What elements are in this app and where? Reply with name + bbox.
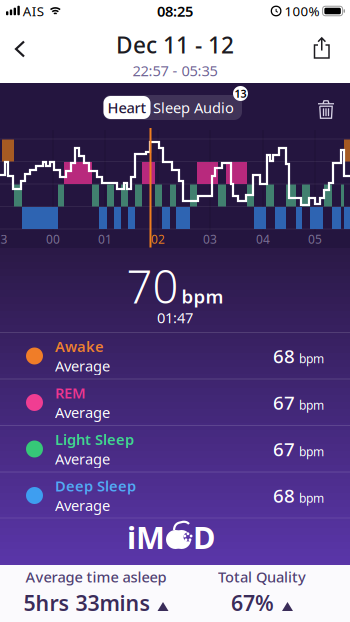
staticText: Average [55,356,110,375]
staticText: Awake [55,336,104,356]
staticText: 67 [273,390,295,415]
staticText: Average [55,495,110,515]
staticText: 03 [203,231,217,247]
staticText: 05 [308,231,322,247]
staticText: 02 [151,231,165,247]
staticText: 22:57 - 05:35 [132,61,217,80]
staticText: Heart [107,98,146,117]
button[interactable]: Heart [103,95,151,120]
staticText: bpm [299,444,324,459]
staticText: 70 [126,256,178,316]
staticText: 08:25 [157,1,193,21]
staticText: bpm [299,351,324,366]
staticText: 67% [231,589,274,617]
staticText: bpm [299,490,324,506]
staticText: 68 [273,483,295,508]
staticText: Total Quality [218,567,306,587]
staticText: 68 [273,344,295,368]
staticText: bpm [181,284,223,309]
staticText: Deep Sleep [55,476,136,495]
staticText: Average time asleep [25,567,166,587]
button[interactable]: Audio [192,95,236,120]
button[interactable] [312,36,331,59]
staticText: 23 [0,231,7,247]
staticText: 01 [98,231,112,247]
staticText: 100% [285,2,320,20]
staticText: Audio [194,98,234,117]
staticText: Light Sleep [55,429,134,449]
staticText: bpm [299,397,324,413]
staticText: Sleep [153,98,190,117]
staticText: iM [127,517,165,557]
staticText: 5hrs 33mins [23,589,150,617]
staticText: D [193,517,215,557]
staticText: 00 [46,231,60,247]
staticText: 01:47 [157,308,193,327]
staticText: AIS [23,2,44,20]
staticText: 67 [273,437,295,461]
button[interactable]: Sleep [151,95,192,120]
staticText: 13 [234,86,246,101]
button[interactable] [11,38,31,59]
button[interactable] [317,100,334,119]
staticText: REM [55,383,86,402]
staticText: Dec 11 - 12 [116,30,234,60]
staticText: 04 [256,231,270,247]
staticText: Average [55,449,110,468]
staticText: Average [55,402,110,422]
